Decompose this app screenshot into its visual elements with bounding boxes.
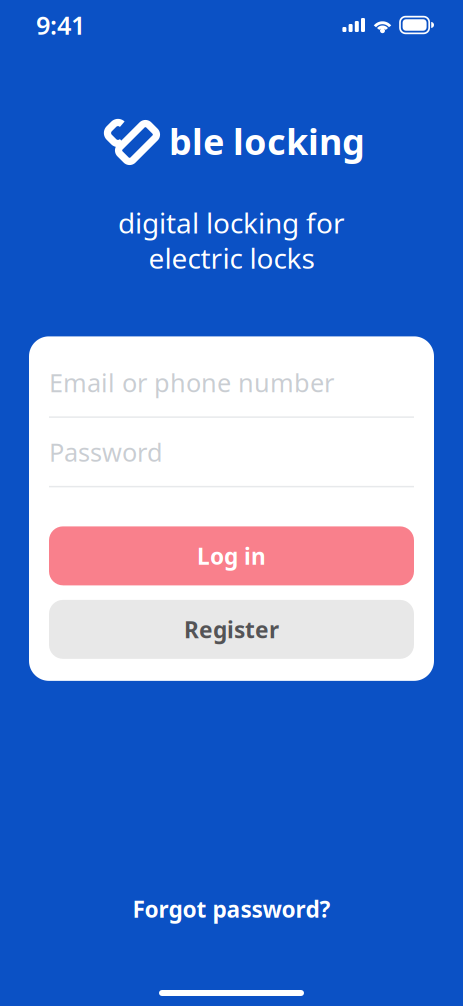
staticText: electric locks	[148, 239, 314, 276]
staticText: 9:41	[36, 8, 85, 42]
staticText: ble locking	[169, 117, 365, 165]
staticText: Log in	[197, 541, 266, 571]
staticText: Email or phone number	[49, 365, 334, 399]
staticText: digital locking for	[118, 204, 345, 241]
staticText: Register	[184, 614, 279, 644]
staticText: Forgot password?	[132, 894, 330, 924]
button[interactable]: Register	[49, 600, 414, 659]
button[interactable]: Log in	[49, 526, 414, 585]
button[interactable]: Forgot password?	[118, 886, 344, 932]
staticText: Password	[49, 435, 163, 469]
